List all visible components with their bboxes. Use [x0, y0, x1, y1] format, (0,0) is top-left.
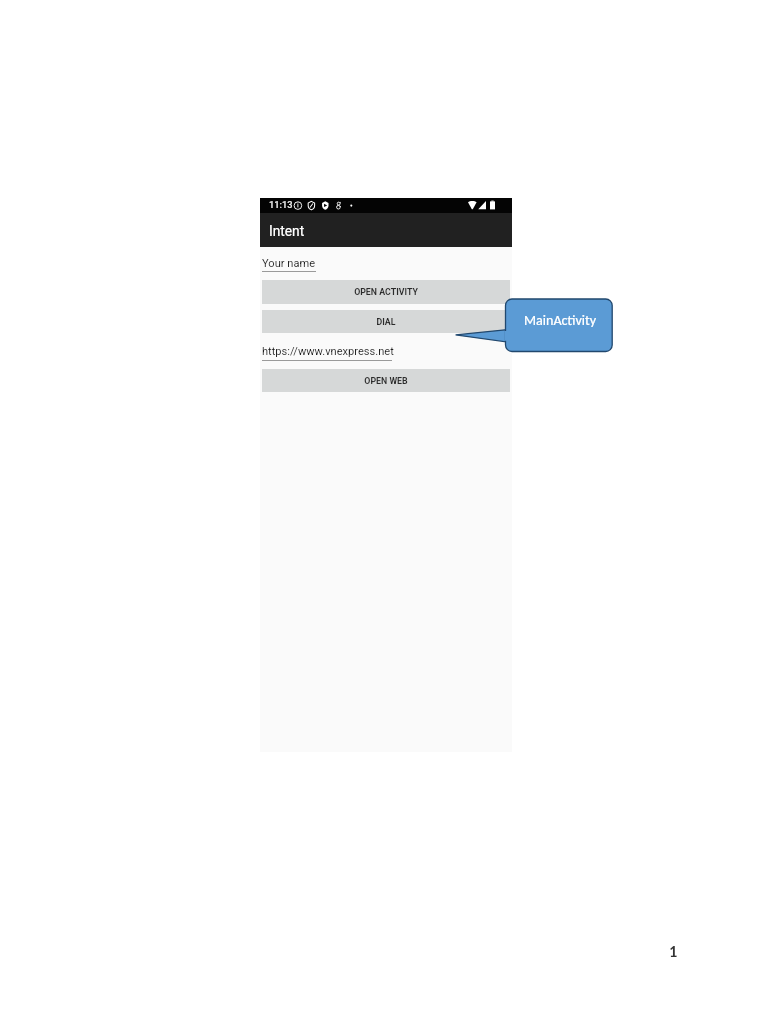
staticText: Intent — [269, 223, 305, 239]
button[interactable]: Intent — [260, 213, 512, 247]
button[interactable]: OPEN WEB — [262, 369, 510, 392]
other: MainActivity callout — [450, 294, 620, 358]
staticText: Your name — [262, 257, 316, 270]
staticText: 1 — [669, 941, 678, 961]
staticText: DIAL — [376, 317, 396, 327]
button[interactable]: https://www.vnexpress.net — [262, 345, 510, 364]
button[interactable]: DIAL — [262, 310, 510, 333]
staticText: MainActivity — [524, 312, 597, 329]
staticText: OPEN ACTIVITY — [354, 287, 418, 297]
staticText: OPEN WEB — [364, 376, 408, 386]
button[interactable]: Your name — [262, 257, 510, 275]
button[interactable]: OPEN ACTIVITY — [262, 280, 510, 304]
staticText: 11:13 — [269, 199, 293, 210]
staticText: https://www.vnexpress.net — [262, 345, 394, 358]
